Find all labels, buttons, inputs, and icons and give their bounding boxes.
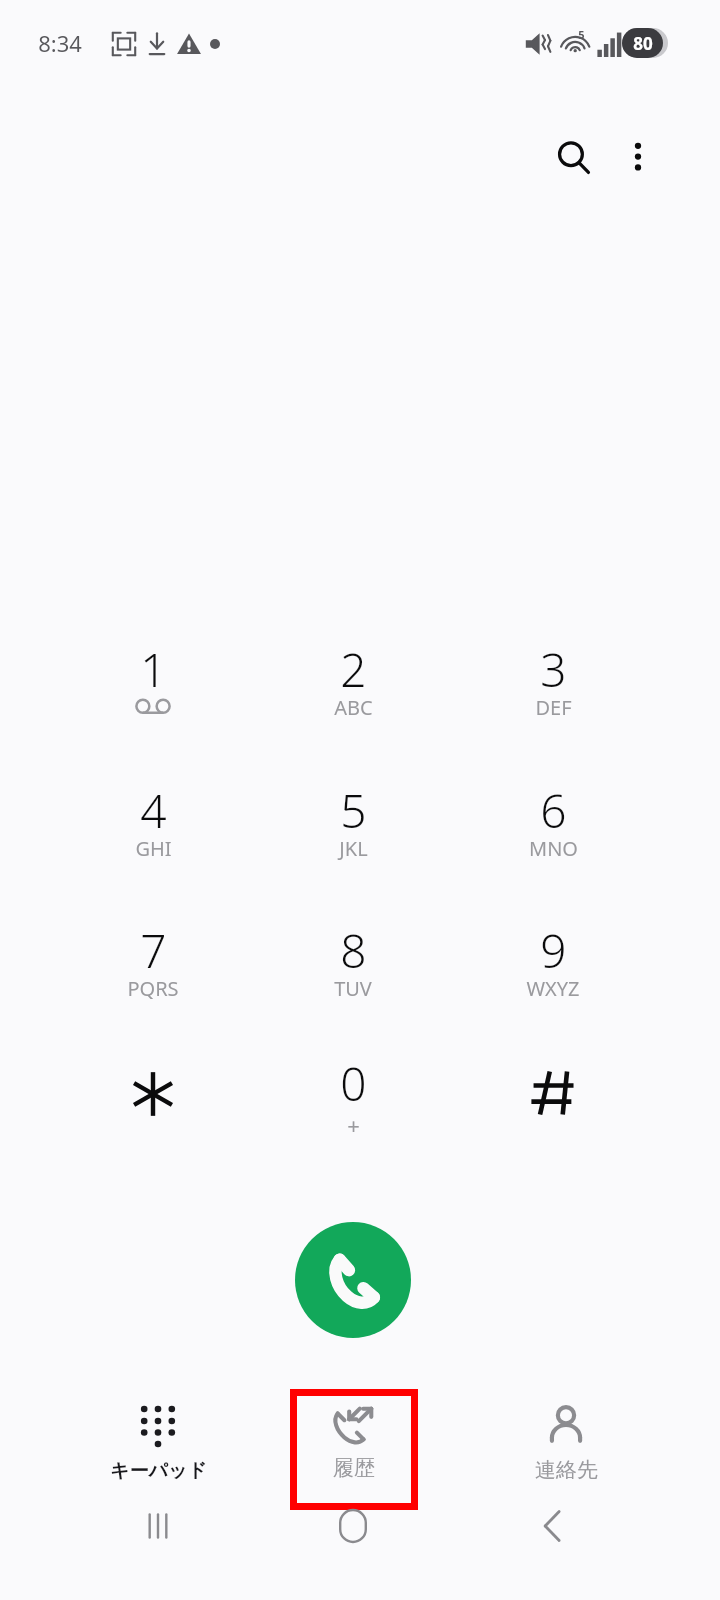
staticText: DEF — [535, 694, 572, 721]
staticText: 6 — [540, 779, 567, 842]
staticText: TUV — [334, 975, 372, 1002]
button[interactable]: Key 4 — [75, 777, 231, 901]
button[interactable]: Home — [303, 1490, 403, 1562]
button[interactable]: Key 6 — [475, 777, 631, 901]
staticText: 8:34 — [38, 28, 82, 58]
staticText: WXYZ — [526, 975, 580, 1002]
staticText: 2 — [340, 638, 367, 701]
button[interactable]: Key 3 — [475, 636, 631, 760]
staticText: 4 — [140, 779, 167, 842]
button[interactable]: Key 7 — [75, 917, 231, 1041]
button[interactable]: Back — [503, 1490, 603, 1562]
staticText: 5 — [340, 779, 367, 842]
staticText: PQRS — [127, 975, 179, 1002]
button[interactable]: 履歴 — [290, 1389, 418, 1510]
staticText: 連絡先 — [535, 1457, 598, 1483]
button[interactable]: キーパッド — [70, 1389, 246, 1510]
button[interactable]: Recent apps — [108, 1490, 208, 1562]
button[interactable]: Key 8 — [275, 917, 431, 1041]
staticText: MNO — [529, 835, 578, 862]
staticText: 履歴 — [333, 1455, 375, 1481]
staticText: GHI — [135, 835, 172, 862]
button[interactable]: Search — [540, 124, 608, 192]
button[interactable]: Key # — [475, 1050, 631, 1174]
staticText: 1 — [140, 638, 167, 701]
staticText: ABC — [334, 694, 373, 721]
staticText: キーパッド — [110, 1459, 207, 1483]
button[interactable]: Key 1 — [75, 636, 231, 760]
button[interactable]: Key 2 — [275, 636, 431, 760]
button[interactable]: Key 0 — [275, 1050, 431, 1174]
staticText: 0 — [340, 1052, 367, 1115]
staticText: 80 — [633, 32, 653, 55]
staticText: 7 — [140, 919, 167, 982]
staticText: 3 — [540, 638, 567, 701]
staticText: 8 — [340, 919, 367, 982]
staticText: + — [347, 1110, 360, 1140]
button[interactable]: Key * — [75, 1050, 231, 1174]
button[interactable]: More options — [606, 124, 670, 188]
button[interactable]: Key 5 — [275, 777, 431, 901]
staticText: 9 — [540, 919, 567, 982]
button[interactable]: 連絡先 — [478, 1389, 654, 1510]
staticText: 5 — [578, 27, 585, 42]
button[interactable]: Call — [295, 1222, 411, 1338]
button[interactable]: Key 9 — [475, 917, 631, 1041]
staticText: JKL — [339, 835, 368, 862]
